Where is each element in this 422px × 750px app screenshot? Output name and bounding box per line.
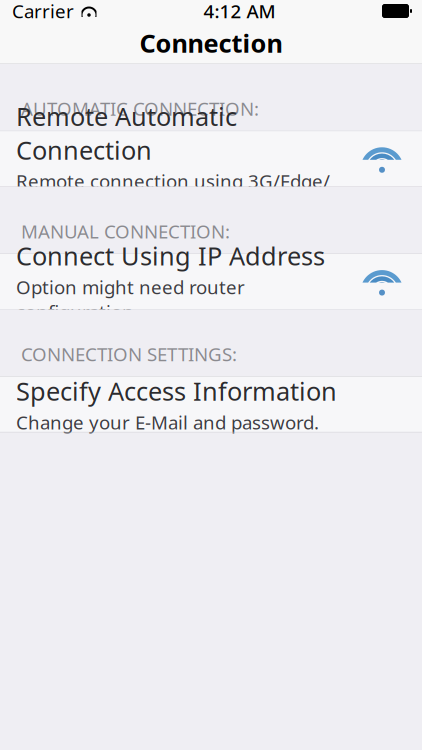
button[interactable]: Specify Access Information [0,376,422,432]
button[interactable]: Remote Automatic Connection [0,131,422,187]
staticText: AUTOMATIC CONNECTION: [21,96,259,121]
staticText: Remote Automatic Connection [16,99,237,167]
staticText: Remote connection using 3G/Edge/WiFi. [16,169,330,218]
staticText: 4:12 AM [203,0,275,23]
staticText: Carrier [12,0,74,23]
staticText: Change your E-Mail and password. [16,410,319,435]
staticText: MANUAL CONNECTION: [21,219,230,244]
staticText: CONNECTION SETTINGS: [21,342,237,366]
staticText: Option might need router configuration. [16,275,245,324]
button[interactable]: Connect Using IP Address [0,254,422,310]
staticText: Connection [139,26,282,60]
staticText: Connect Using IP Address [16,239,325,273]
staticText: Specify Access Information [16,374,337,408]
